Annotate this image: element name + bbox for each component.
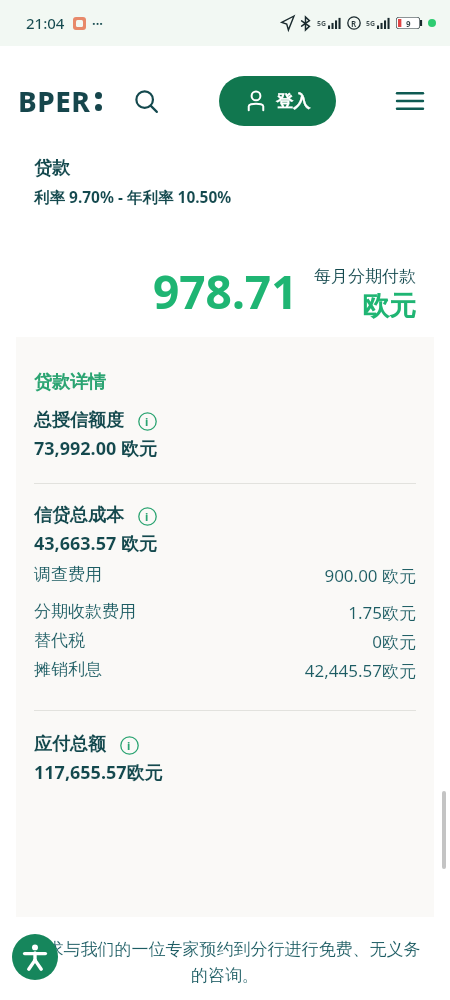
staticText: 分期收款费用	[34, 601, 136, 622]
staticText: 0欧元	[304, 630, 416, 653]
staticText: 42,445.57欧元	[304, 659, 416, 682]
staticText: i	[145, 509, 149, 524]
staticText: 贷款	[34, 157, 70, 180]
staticText: 900.00 欧元	[304, 564, 416, 587]
staticText: 摊销利息	[34, 659, 102, 680]
button[interactable]: More information about 总授信额度	[136, 410, 158, 432]
button[interactable]: More information about 信贷总成本	[136, 505, 158, 527]
staticText: 贷款详情	[34, 371, 106, 394]
staticText: 117,655.57欧元	[34, 760, 163, 785]
button[interactable]: Menu	[388, 79, 432, 123]
staticText: 978.71	[153, 260, 298, 323]
staticText: ···	[92, 14, 103, 32]
staticText: 信贷总成本	[34, 504, 124, 527]
staticText: i	[127, 738, 131, 753]
staticText: 9	[406, 18, 411, 29]
staticText: R	[351, 18, 357, 29]
button[interactable]: Search	[124, 79, 168, 123]
button[interactable]: Accessibility options	[12, 934, 58, 980]
staticText: 21:04	[26, 13, 65, 33]
staticText: 替代税	[34, 630, 85, 651]
staticText: 总授信额度	[34, 409, 124, 432]
staticText: 登入	[276, 91, 310, 112]
staticText: BPER	[18, 82, 91, 120]
staticText: i	[145, 414, 149, 429]
staticText: 请求与我们的一位专家预约到分行进行免费、无义务的咨询。	[28, 939, 422, 986]
staticText: 利率 9.70% - 年利率 10.50%	[34, 186, 232, 207]
staticText: 调查费用	[34, 564, 102, 585]
staticText: 欧元	[362, 289, 416, 323]
staticText: 应付总额	[34, 733, 106, 756]
staticText: 1.75欧元	[304, 601, 416, 624]
staticText: 5G	[366, 19, 376, 29]
button[interactable]: 登入	[219, 76, 336, 126]
staticText: 5G	[317, 19, 327, 29]
button[interactable]: More information about 应付总额	[118, 734, 140, 756]
staticText: 每月分期付款	[314, 266, 416, 287]
staticText: 43,663.57 欧元	[34, 531, 157, 556]
staticText: 73,992.00 欧元	[34, 436, 157, 461]
